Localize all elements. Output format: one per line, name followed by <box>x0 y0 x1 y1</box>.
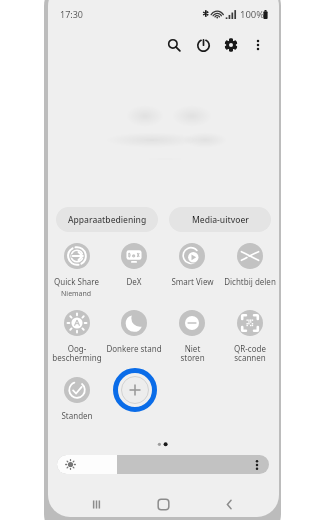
staticText: Quick Share <box>54 276 99 287</box>
button[interactable]: Standen <box>48 377 105 421</box>
button[interactable]: Home <box>149 490 177 518</box>
button[interactable]: Quick Share <box>48 243 105 299</box>
button[interactable]: Oog- bescherming <box>48 310 105 364</box>
staticText: Standen <box>61 410 93 421</box>
button[interactable]: Brightness <box>57 455 269 474</box>
button[interactable]: Dichtbij delen <box>221 243 279 287</box>
staticText: 17:30 <box>60 8 84 20</box>
staticText: Donkere stand <box>106 343 162 354</box>
staticText: DeX <box>126 276 142 287</box>
button[interactable]: Niet storen <box>163 310 221 364</box>
button[interactable]: Apparaatbediening <box>56 207 158 232</box>
button[interactable]: Settings <box>220 34 242 56</box>
staticText: Niet storen <box>180 343 205 364</box>
button[interactable]: Search <box>163 34 185 56</box>
staticText: Apparaatbediening <box>68 214 147 226</box>
button[interactable]: Smart View <box>163 243 221 287</box>
staticText: Media-uitvoer <box>192 214 249 226</box>
button[interactable]: Power <box>192 34 214 56</box>
button[interactable]: Add <box>112 367 158 413</box>
staticText: Smart View <box>171 276 214 287</box>
button[interactable]: Donkere stand <box>105 310 163 354</box>
staticText: Niemand <box>61 289 92 299</box>
button[interactable]: Media-uitvoer <box>169 207 271 232</box>
staticText: Dichtbij delen <box>224 276 276 287</box>
button[interactable]: Recents <box>82 490 110 518</box>
staticText: Oog- bescherming <box>52 343 102 364</box>
button[interactable]: More options <box>247 34 269 56</box>
staticText: QR-code scannen <box>234 343 266 364</box>
button[interactable]: Back <box>215 490 243 518</box>
button[interactable]: QR-code scannen <box>221 310 279 364</box>
staticText: 100% <box>240 8 265 21</box>
button[interactable]: DeX <box>105 243 163 287</box>
